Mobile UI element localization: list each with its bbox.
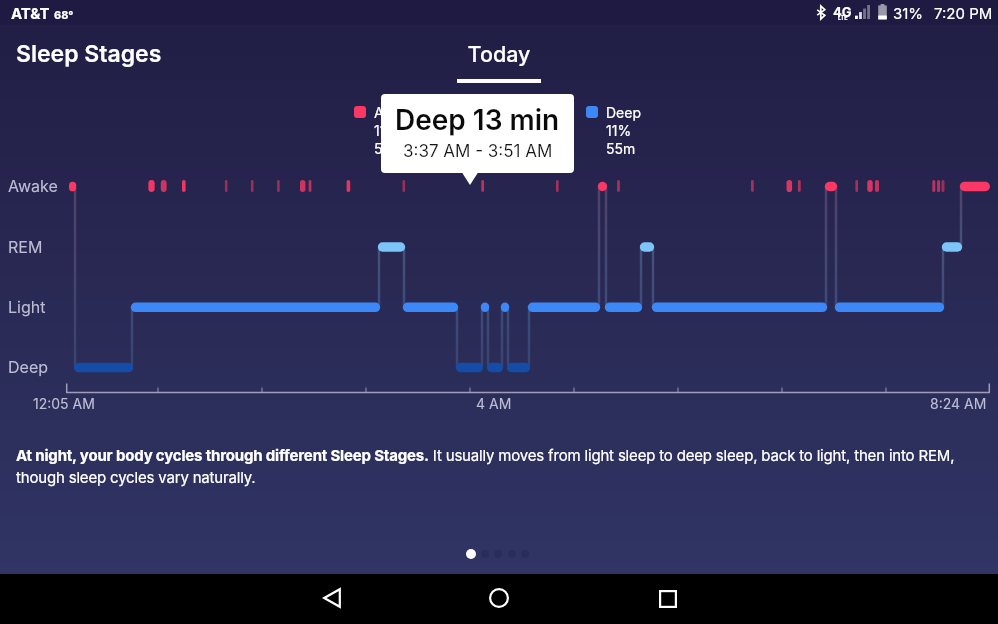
staticText: 4G [833,4,852,20]
staticText: Deep 13 min [395,103,560,137]
staticText: At night, your body cycles through diffe… [16,446,984,486]
staticText: 55m [606,140,636,157]
staticText: Awake [374,104,418,121]
staticText: Today [457,41,541,67]
button[interactable]: Page 2 [481,550,489,558]
button[interactable]: Page 1 [466,549,476,559]
staticText: AT&T [11,4,50,22]
staticText: 4 AM [476,395,512,412]
staticText: 3:37 AM - 3:51 AM [403,141,553,162]
button[interactable]: Page 4 [508,550,516,558]
button[interactable]: Recents [642,574,694,624]
staticText: 8:24 AM [930,395,987,412]
staticText: Light [8,297,46,316]
staticText: 11% [606,122,632,139]
staticText: 68° [54,8,74,21]
staticText: 56m [374,140,404,157]
staticText: REM [8,237,43,256]
staticText: Sleep Stages [16,40,162,68]
button[interactable]: Home [473,573,525,623]
staticText: LTE [838,15,848,22]
staticText: Awake [8,176,58,195]
button[interactable]: Page 5 [521,550,529,558]
staticText: 11% [374,122,400,139]
button[interactable]: Page 3 [494,550,502,558]
staticText: 31% [893,4,924,22]
staticText: Deep [606,104,641,121]
staticText: Deep [8,357,48,376]
button[interactable]: Today [457,41,541,83]
button[interactable]: Back [306,573,358,623]
staticText: 7:20 PM [934,4,993,22]
staticText: 12:05 AM [33,395,95,412]
